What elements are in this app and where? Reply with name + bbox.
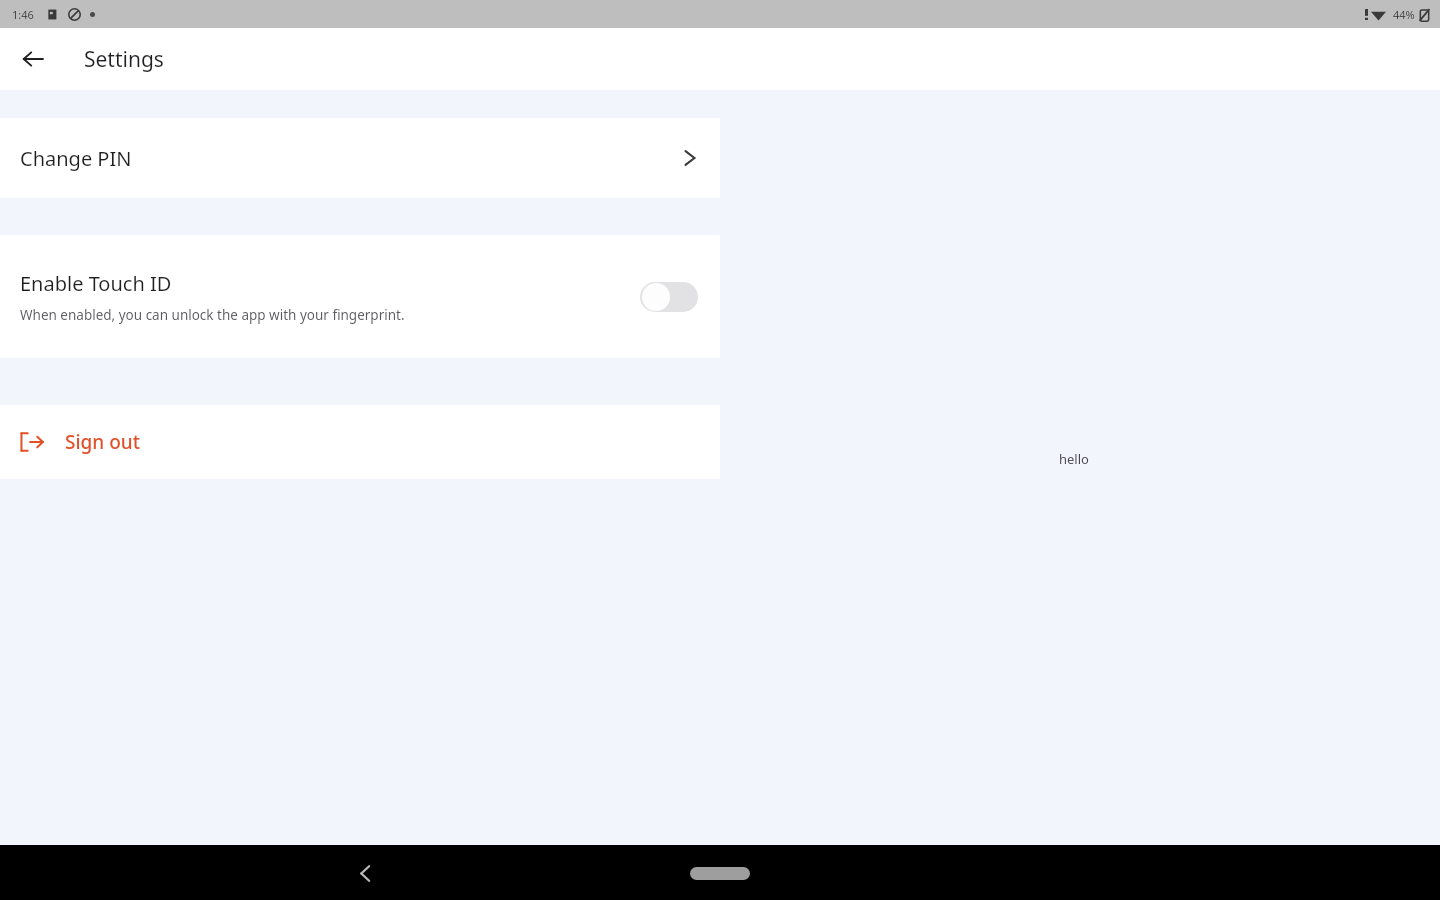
staticText: 44% [1393, 7, 1415, 22]
button[interactable]: Enable Touch ID [0, 235, 720, 358]
staticText: Enable Touch ID [20, 270, 172, 297]
staticText: Change PIN [20, 145, 132, 172]
button[interactable]: Change PIN [0, 118, 720, 198]
button[interactable]: Back [342, 850, 388, 896]
button[interactable]: Enable Touch ID toggle [640, 280, 698, 314]
staticText: Sign out [65, 429, 141, 455]
button[interactable]: Back [10, 36, 56, 82]
staticText: hello [1059, 450, 1089, 468]
button[interactable]: Sign out [0, 405, 720, 479]
staticText: Settings [84, 45, 164, 74]
staticText: When enabled, you can unlock the app wit… [20, 306, 405, 324]
button[interactable]: Home [689, 860, 751, 886]
staticText: 1:46 [12, 7, 34, 22]
